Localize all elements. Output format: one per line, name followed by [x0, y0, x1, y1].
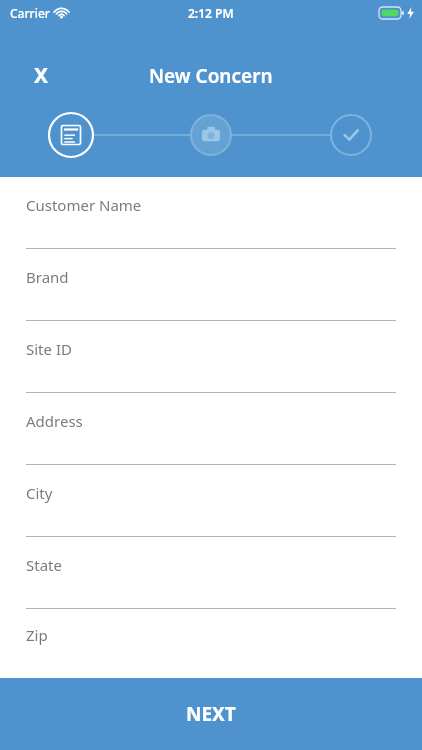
- button[interactable]: NEXT: [0, 678, 422, 750]
- staticText: State: [26, 555, 62, 575]
- button[interactable]: State: [0, 537, 422, 609]
- staticText: Address: [26, 411, 83, 431]
- staticText: Brand: [26, 267, 69, 287]
- button[interactable]: Zip: [0, 609, 422, 678]
- button[interactable]: Close: [22, 56, 60, 94]
- staticText: 2:12 PM: [188, 5, 234, 21]
- button[interactable]: Site ID: [0, 321, 422, 393]
- staticText: NEXT: [186, 701, 236, 727]
- staticText: City: [26, 483, 53, 503]
- staticText: X: [34, 61, 49, 90]
- staticText: Customer Name: [26, 195, 142, 215]
- staticText: Carrier: [10, 5, 50, 21]
- button[interactable]: Address: [0, 393, 422, 465]
- button[interactable]: Brand: [0, 249, 422, 321]
- staticText: Zip: [26, 625, 48, 645]
- staticText: Site ID: [26, 339, 72, 359]
- button[interactable]: Customer Name: [0, 177, 422, 249]
- button[interactable]: City: [0, 465, 422, 537]
- staticText: New Concern: [149, 63, 273, 89]
